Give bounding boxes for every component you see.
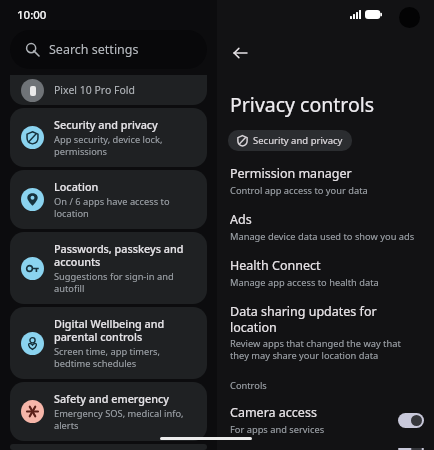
staticText: Suggestions for sign-in and autofill: [54, 270, 197, 295]
staticText: Controls: [230, 379, 267, 392]
staticText: Ads: [230, 211, 252, 228]
button[interactable]: Digital Wellbeing and parental controls: [10, 307, 207, 379]
staticText: Security and privacy: [253, 134, 343, 147]
staticText: Pixel 10 Pro Fold: [54, 83, 136, 97]
staticText: Privacy controls: [230, 91, 375, 118]
staticText: Passwords, passkeys and accounts: [54, 241, 197, 269]
staticText: Emergency SOS, medical info, alerts: [54, 407, 197, 432]
staticText: Review apps that changed the way that th…: [230, 337, 418, 362]
button[interactable]: Camera access: [217, 404, 434, 436]
staticText: Data sharing updates for location: [230, 303, 418, 335]
staticText: 10:00: [17, 7, 47, 23]
staticText: Screen time, app timers, bedtime schedul…: [54, 345, 197, 370]
staticText: On / 6 apps have access to location: [54, 195, 197, 220]
button[interactable]: Microphone access: [398, 448, 424, 450]
staticText: For apps and services: [230, 423, 325, 436]
staticText: Location: [54, 179, 99, 194]
button[interactable]: Safety and emergency: [10, 382, 207, 441]
staticText: Security and privacy: [54, 117, 158, 132]
button[interactable]: Back: [223, 36, 257, 70]
staticText: Control app access to your data: [230, 184, 368, 197]
button[interactable]: Pixel 10 Pro Fold: [10, 75, 207, 105]
staticText: Permission manager: [230, 165, 352, 182]
button[interactable]: Location: [10, 170, 207, 229]
button[interactable]: Health Connect: [217, 257, 434, 289]
other: Search: [26, 43, 39, 56]
button[interactable]: Passwords, passkeys and accounts: [10, 232, 207, 304]
staticText: Manage app access to health data: [230, 276, 379, 289]
button[interactable]: Security and privacy: [10, 108, 207, 167]
button[interactable]: Security and privacy: [228, 130, 352, 151]
staticText: Safety and emergency: [54, 391, 169, 406]
staticText: App security, device lock, permissions: [54, 133, 197, 158]
staticText: Search settings: [49, 41, 139, 58]
button[interactable]: Ads: [217, 211, 434, 243]
staticText: Health Connect: [230, 257, 321, 274]
button[interactable]: Camera access: [398, 413, 424, 428]
button[interactable]: Search: [10, 30, 207, 69]
staticText: Camera access: [230, 404, 317, 421]
staticText: Digital Wellbeing and parental controls: [54, 316, 197, 344]
button[interactable]: Microphone access: [217, 448, 434, 450]
button[interactable]: Data sharing updates for location: [217, 303, 434, 362]
staticText: Manage device data used to show you ads: [230, 230, 415, 243]
button[interactable]: Permission manager: [217, 165, 434, 197]
